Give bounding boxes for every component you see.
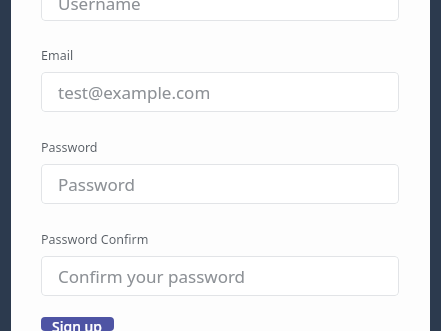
staticText: Email bbox=[41, 47, 74, 64]
button[interactable]: test@example.com bbox=[41, 72, 399, 112]
staticText: Password bbox=[58, 173, 135, 196]
staticText: Password Confirm bbox=[41, 231, 149, 248]
staticText: Sign up bbox=[52, 317, 103, 331]
button[interactable]: Confirm your password bbox=[41, 256, 399, 296]
staticText: Confirm your password bbox=[58, 265, 246, 288]
button[interactable]: Sign up bbox=[41, 317, 114, 331]
staticText: test@example.com bbox=[58, 81, 211, 104]
staticText: Username bbox=[58, 0, 141, 15]
staticText: Password bbox=[41, 139, 98, 156]
button[interactable]: Password bbox=[41, 164, 399, 204]
button[interactable]: Username bbox=[41, 0, 399, 21]
